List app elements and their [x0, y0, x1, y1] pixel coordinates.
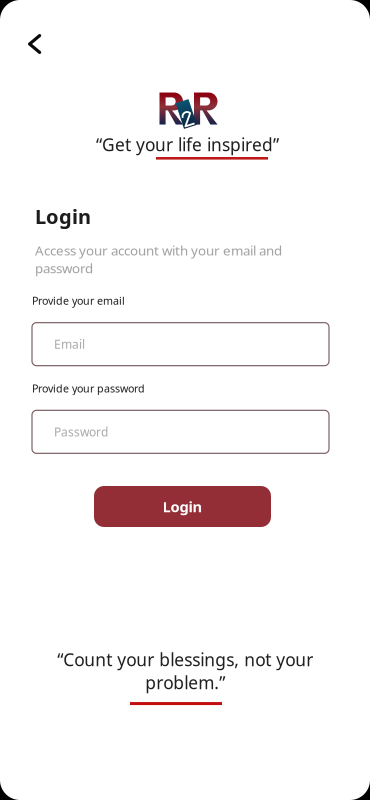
button[interactable]: Login — [94, 486, 271, 527]
staticText: Provide your password — [32, 381, 145, 395]
staticText: Login — [162, 497, 202, 516]
staticText: Provide your email — [32, 293, 125, 308]
staticText: Password — [54, 424, 108, 440]
staticText: Access your account with your email and … — [35, 242, 282, 277]
staticText: Email — [54, 336, 85, 352]
staticText: Login — [35, 203, 91, 230]
button[interactable]: Password — [32, 410, 329, 453]
button[interactable]: Email — [32, 323, 329, 366]
staticText: “Get your life inspired” — [96, 133, 279, 156]
staticText: “Count your blessings, not your problem.… — [57, 648, 313, 694]
button[interactable]: Back — [18, 24, 51, 64]
